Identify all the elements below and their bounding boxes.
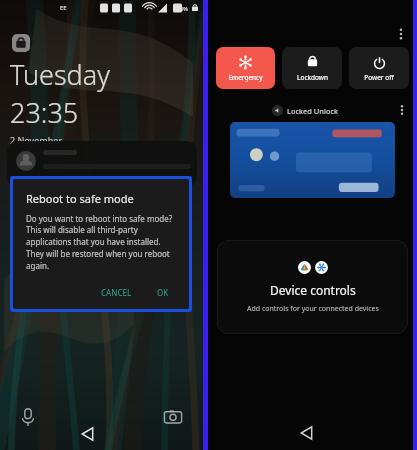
staticText: Add controls for your connected devices [247, 304, 379, 314]
button[interactable]: CANCEL [94, 282, 139, 303]
staticText: Power off [364, 73, 394, 82]
staticText: EE [60, 4, 67, 12]
button[interactable]: Locked [12, 34, 30, 52]
staticText: 2 November [10, 134, 62, 146]
staticText: Do you want to reboot into safe mode? Th… [26, 213, 178, 272]
staticText: Device controls [270, 282, 356, 298]
staticText: Emergency [228, 73, 263, 82]
button[interactable]: Emergency [216, 47, 275, 89]
button[interactable]: Back [297, 423, 317, 443]
button[interactable] [7, 141, 197, 187]
staticText: 23:35 [10, 94, 79, 131]
staticText: Lockdown [297, 73, 328, 82]
button[interactable]: Device controls [217, 240, 408, 334]
button[interactable]: Lockdown [282, 47, 342, 89]
button[interactable]: Voice assistant [18, 407, 38, 427]
button[interactable]: OK [148, 282, 178, 303]
button[interactable] [230, 122, 395, 198]
button[interactable]: More options [393, 26, 409, 42]
staticText: OK [157, 287, 169, 298]
button[interactable]: Media options [395, 103, 409, 117]
button[interactable]: Back [78, 424, 98, 444]
staticText: Tuesday [10, 56, 110, 93]
button[interactable]: Camera [163, 407, 183, 427]
staticText: 65% [177, 5, 188, 12]
button[interactable]: Power off [349, 47, 409, 89]
staticText: Locked Unlock [287, 106, 339, 116]
staticText: Reboot to safe mode [26, 191, 134, 206]
staticText: CANCEL [101, 287, 132, 298]
